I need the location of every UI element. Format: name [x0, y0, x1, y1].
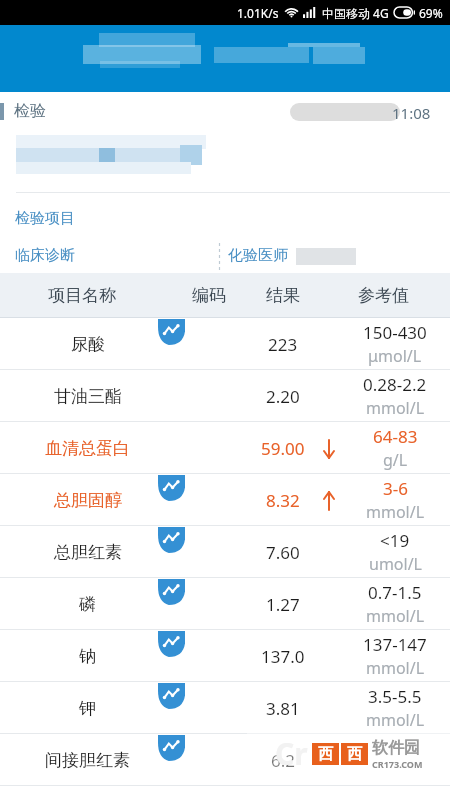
staticText: 钠	[79, 646, 96, 667]
staticText: 甘油三酯	[54, 386, 122, 407]
staticText: 尿酸	[71, 334, 105, 355]
staticText: 0.7-1.5	[368, 581, 422, 604]
staticText: 钾	[79, 698, 96, 719]
staticText: 3-6	[383, 477, 408, 500]
staticText: 西	[347, 745, 362, 764]
staticText: 磷	[79, 594, 96, 615]
staticText: 0.28-2.2	[363, 373, 427, 396]
staticText: 总胆固醇	[54, 490, 122, 511]
button[interactable]: 钾	[0, 682, 450, 734]
button[interactable]: 趋势图	[158, 527, 185, 553]
button[interactable]: 临床诊断	[15, 246, 75, 265]
staticText: 6.2	[271, 749, 296, 772]
staticText: 项目名称	[48, 285, 116, 306]
staticText: mmol/L	[366, 397, 425, 419]
button[interactable]: 趋势图	[158, 631, 185, 657]
staticText: 编码	[192, 285, 226, 306]
staticText: 69%	[419, 5, 443, 21]
button[interactable]: 甘油三酯	[0, 370, 450, 422]
staticText: Cr	[275, 733, 308, 774]
button[interactable]: 趋势图	[158, 683, 185, 709]
staticText: 11:08	[392, 103, 431, 123]
staticText: 中国移动 4G	[322, 5, 389, 21]
staticText: CR173.COM	[372, 758, 423, 770]
button[interactable]: 血清总蛋白	[0, 422, 450, 474]
staticText: 结果	[266, 285, 300, 306]
staticText: 1.27	[266, 593, 300, 616]
staticText: 西	[318, 745, 333, 764]
staticText: 150-430	[363, 321, 427, 344]
staticText: mmol/L	[366, 709, 425, 731]
button[interactable]: 尿酸	[0, 318, 450, 370]
staticText: 检验	[14, 101, 46, 121]
button[interactable]: 趋势图	[158, 319, 185, 345]
staticText: 137.0	[261, 645, 305, 668]
staticText: 间接胆红素	[45, 750, 130, 771]
staticText: 137-147	[363, 633, 427, 656]
staticText: 8.32	[266, 489, 300, 512]
staticText: μmol/L	[368, 345, 422, 367]
button[interactable]: Title	[0, 25, 450, 92]
button[interactable]: 趋势图	[158, 735, 185, 761]
staticText: 2.20	[266, 385, 300, 408]
staticText: 检验项目	[15, 209, 75, 228]
button[interactable]: 检验项目	[0, 198, 450, 239]
staticText: 1.01K/s	[237, 5, 279, 21]
staticText: mmol/L	[366, 501, 425, 523]
staticText: <19	[380, 529, 410, 552]
staticText: 3.5-5.5	[368, 685, 422, 708]
button[interactable]: 磷	[0, 578, 450, 630]
staticText: 223	[268, 333, 298, 356]
button[interactable]: 总胆固醇	[0, 474, 450, 526]
button[interactable]: 趋势图	[158, 475, 185, 501]
button[interactable]: 趋势图	[158, 579, 185, 605]
staticText: 总胆红素	[54, 542, 122, 563]
button[interactable]: 化验医师	[228, 246, 288, 265]
staticText: g/L	[383, 449, 408, 471]
staticText: 7.60	[266, 541, 300, 564]
staticText: umol/L	[369, 553, 422, 575]
staticText: 3.81	[266, 697, 300, 720]
staticText: 血清总蛋白	[45, 438, 130, 459]
staticText: 64-83	[373, 425, 418, 448]
staticText: 参考值	[358, 285, 409, 306]
staticText: 59.00	[261, 437, 305, 460]
staticText: 软件园	[372, 738, 420, 758]
staticText: mmol/L	[366, 657, 425, 679]
button[interactable]: 总胆红素	[0, 526, 450, 578]
button[interactable]: 钠	[0, 630, 450, 682]
staticText: mmol/L	[366, 605, 425, 627]
button[interactable]: 间接胆红素	[0, 734, 450, 786]
